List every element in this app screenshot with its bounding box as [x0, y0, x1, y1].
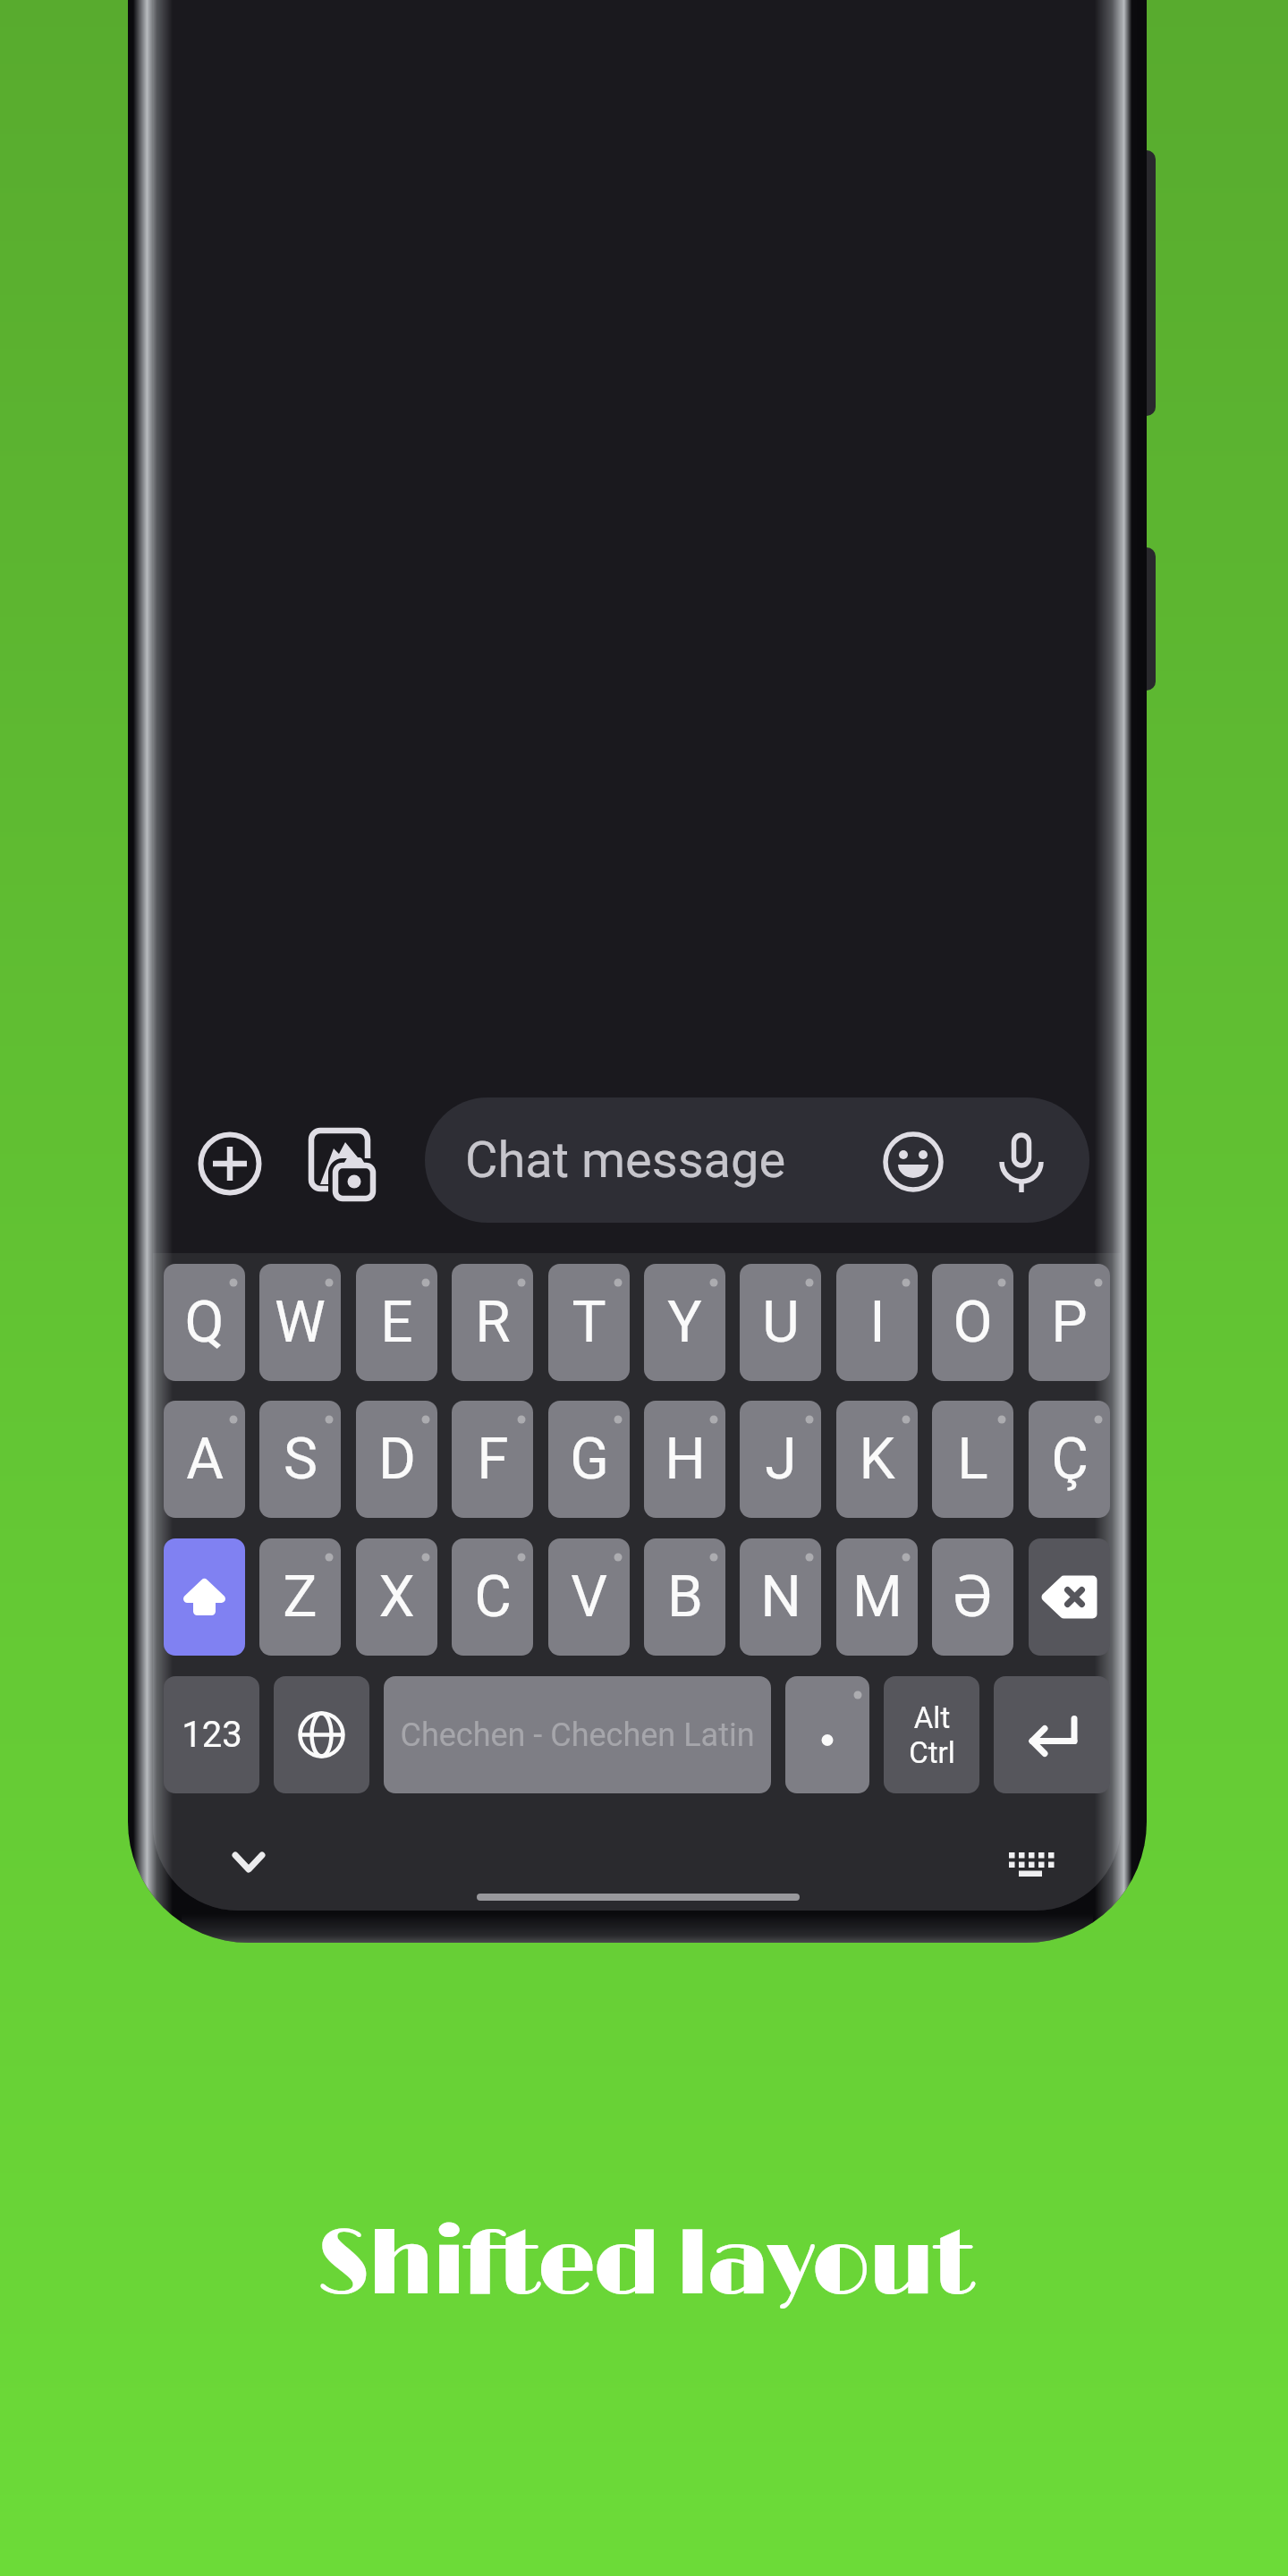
button[interactable]: Y — [644, 1264, 725, 1381]
staticText: F — [477, 1426, 509, 1493]
staticText: A — [186, 1426, 224, 1493]
button[interactable] — [994, 1676, 1110, 1793]
button[interactable]: T — [548, 1264, 630, 1381]
button[interactable]: Alt Ctrl — [884, 1676, 979, 1793]
button[interactable] — [1000, 1839, 1063, 1885]
button[interactable]: Ç — [1029, 1401, 1110, 1518]
button[interactable]: E — [356, 1264, 437, 1381]
staticText: Q — [184, 1289, 225, 1356]
staticText: Ə — [953, 1563, 993, 1631]
button[interactable] — [197, 1131, 263, 1197]
staticText: Ç — [1051, 1426, 1089, 1493]
staticText: Y — [667, 1289, 702, 1356]
staticText: B — [667, 1563, 703, 1631]
staticText: K — [859, 1426, 895, 1493]
button[interactable]: Chat message — [425, 1097, 1089, 1223]
button[interactable] — [1029, 1538, 1110, 1656]
staticText: V — [571, 1563, 607, 1631]
staticText: C — [474, 1563, 512, 1631]
button[interactable] — [304, 1123, 386, 1206]
button[interactable]: Ə — [932, 1538, 1013, 1656]
button[interactable]: A — [164, 1401, 245, 1518]
staticText: O — [953, 1289, 993, 1356]
staticText: J — [765, 1426, 797, 1493]
button[interactable]: W — [259, 1264, 341, 1381]
staticText: M — [852, 1563, 902, 1631]
staticText: Chechen - Chechen Latin — [400, 1716, 755, 1754]
button[interactable] — [991, 1127, 1052, 1202]
button[interactable]: S — [259, 1401, 341, 1518]
button[interactable]: P — [1029, 1264, 1110, 1381]
button[interactable]: D — [356, 1401, 437, 1518]
staticText: U — [762, 1289, 800, 1356]
staticText: P — [1051, 1289, 1088, 1356]
staticText: H — [665, 1426, 706, 1493]
staticText: X — [378, 1563, 415, 1631]
button[interactable]: X — [356, 1538, 437, 1656]
button[interactable]: J — [740, 1401, 821, 1518]
staticText: Shifted layout — [317, 2209, 972, 2321]
button[interactable]: B — [644, 1538, 725, 1656]
staticText: 123 — [182, 1714, 242, 1756]
button[interactable]: U — [740, 1264, 821, 1381]
button[interactable]: V — [548, 1538, 630, 1656]
button[interactable]: N — [740, 1538, 821, 1656]
button[interactable]: 123 — [164, 1676, 259, 1793]
staticText: Chat message — [465, 1131, 786, 1190]
staticText: N — [760, 1563, 801, 1631]
button[interactable]: K — [836, 1401, 918, 1518]
button[interactable]: L — [932, 1401, 1013, 1518]
button[interactable] — [224, 1844, 274, 1884]
staticText: I — [869, 1289, 885, 1356]
staticText: Z — [283, 1563, 318, 1631]
button[interactable]: F — [452, 1401, 533, 1518]
button[interactable]: Q — [164, 1264, 245, 1381]
staticText: S — [284, 1426, 318, 1493]
staticText: T — [572, 1289, 606, 1356]
button[interactable] — [882, 1131, 945, 1193]
button[interactable]: I — [836, 1264, 918, 1381]
button[interactable]: Chechen - Chechen Latin — [384, 1676, 771, 1793]
button[interactable]: R — [452, 1264, 533, 1381]
staticText: D — [378, 1426, 416, 1493]
button[interactable]: C — [452, 1538, 533, 1656]
button[interactable]: Z — [259, 1538, 341, 1656]
staticText: R — [475, 1289, 511, 1356]
button[interactable] — [164, 1538, 245, 1656]
button[interactable]: M — [836, 1538, 918, 1656]
button[interactable] — [274, 1676, 369, 1793]
staticText: G — [570, 1426, 609, 1493]
staticText: L — [957, 1426, 988, 1493]
button[interactable] — [785, 1676, 869, 1793]
button[interactable]: H — [644, 1401, 725, 1518]
staticText: W — [275, 1289, 326, 1356]
button[interactable]: O — [932, 1264, 1013, 1381]
button[interactable]: G — [548, 1401, 630, 1518]
staticText: E — [380, 1289, 413, 1356]
staticText: Alt Ctrl — [909, 1700, 955, 1770]
